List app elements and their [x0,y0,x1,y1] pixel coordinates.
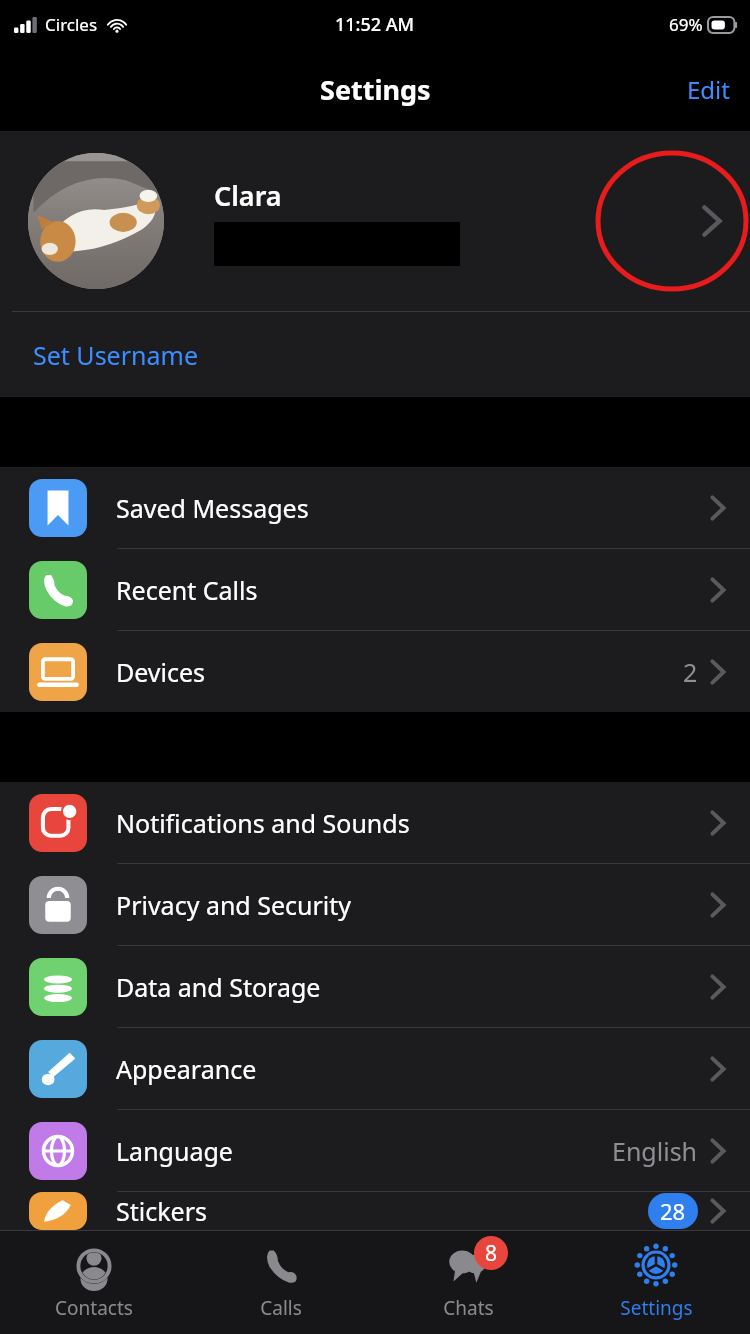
button[interactable]: Privacy and Security [0,864,750,945]
button[interactable]: Appearance [0,1028,750,1109]
button[interactable]: Stickers [0,1192,750,1230]
staticText: Chats [443,1295,494,1321]
button[interactable]: Contacts [0,1230,187,1334]
button[interactable]: Data and Storage [0,946,750,1027]
staticText: Language [116,1134,612,1168]
staticText: Settings [620,1295,693,1321]
staticText: 11:52 AM [335,12,415,37]
button[interactable]: Clara [0,131,750,311]
staticText: Data and Storage [116,970,710,1004]
button[interactable]: Set Username [0,312,750,397]
staticText: 8 [485,1239,498,1268]
staticText: Calls [260,1295,302,1321]
button[interactable]: Devices [0,631,750,712]
staticText: Notifications and Sounds [116,806,710,840]
staticText: English [612,1134,698,1168]
button[interactable]: Notifications and Sounds [0,782,750,863]
button[interactable]: 8 [374,1230,562,1334]
staticText: Edit [687,73,730,106]
staticText: Appearance [116,1052,710,1086]
button[interactable]: Edit [667,63,750,116]
button[interactable]: Language [0,1110,750,1191]
staticText: Clara [214,177,282,214]
staticText: Saved Messages [116,491,710,525]
staticText: 69% [669,13,703,36]
staticText: Settings [320,71,431,108]
staticText: Recent Calls [116,573,710,607]
staticText: Stickers [116,1194,648,1228]
staticText: Circles [45,13,98,36]
button[interactable]: Recent Calls [0,549,750,630]
button[interactable]: Settings [562,1230,750,1334]
staticText: Set Username [33,338,198,372]
staticText: 28 [660,1196,686,1226]
button[interactable]: Calls [187,1230,374,1334]
staticText: Privacy and Security [116,888,710,922]
button[interactable]: Saved Messages [0,467,750,548]
staticText: Devices [116,655,683,689]
staticText: Contacts [55,1295,133,1321]
staticText: 2 [683,655,698,689]
